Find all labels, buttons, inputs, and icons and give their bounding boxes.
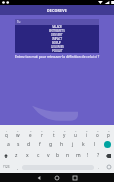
staticText: ! (87, 152, 89, 159)
staticText: 1 (6, 129, 8, 132)
button[interactable]: Backspace (103, 150, 114, 161)
staticText: 5 (53, 129, 55, 132)
button[interactable]: c (33, 150, 43, 161)
button[interactable]: l (89, 139, 100, 150)
staticText: l (94, 141, 96, 148)
button[interactable]: ENTREMETS (15, 29, 99, 33)
staticText: j (72, 141, 74, 148)
button[interactable]: ?123 (0, 161, 13, 173)
button[interactable]: j (67, 139, 78, 150)
button[interactable]: 7 (70, 128, 81, 139)
staticText: DESSERT (51, 33, 63, 37)
button[interactable]: 9 (92, 128, 103, 139)
staticText: q (5, 132, 8, 138)
staticText: , (17, 165, 19, 170)
staticText: n (66, 152, 70, 159)
button[interactable]: h (56, 139, 67, 150)
button[interactable]: Emoji (103, 161, 114, 173)
button[interactable]: Shift (0, 150, 11, 161)
button[interactable]: 4 (36, 128, 48, 139)
button[interactable]: f (34, 139, 45, 150)
button[interactable]: POULET (15, 49, 99, 53)
staticText: g (49, 141, 53, 148)
button[interactable]: Enter (100, 139, 114, 150)
staticText: p (107, 132, 110, 138)
staticText: Entrez ton mot pour retrouver la définit… (13, 54, 101, 58)
staticText: w (16, 132, 20, 138)
staticText: b (56, 152, 60, 159)
staticText: u (74, 132, 77, 138)
button[interactable]: 1 (0, 128, 12, 139)
staticText: 3 (30, 129, 32, 132)
staticText: o (96, 132, 99, 138)
button[interactable]: s (13, 139, 23, 150)
staticText: 0 (108, 129, 110, 132)
staticText: ?123 (3, 165, 10, 169)
staticText: 7 (75, 129, 77, 132)
staticText: IMPACT (52, 37, 63, 41)
staticText: 9 (97, 129, 99, 132)
staticText: 2 (17, 129, 19, 132)
staticText: LEGUMES (51, 45, 64, 49)
staticText: z (15, 152, 18, 159)
staticText: DECOREVE (47, 8, 68, 13)
button[interactable]: Home (48, 173, 66, 182)
staticText: v (47, 152, 50, 159)
button[interactable]: 3 (24, 128, 36, 139)
staticText: 6 (64, 129, 66, 132)
staticText: d (27, 141, 31, 148)
staticText: f (39, 141, 41, 148)
button[interactable]: LEGUMES (15, 45, 99, 49)
button[interactable]: b (53, 150, 63, 161)
staticText: a (7, 141, 10, 148)
button[interactable]: z (11, 150, 22, 161)
staticText: BOEUF (52, 41, 62, 45)
staticText: m (76, 152, 81, 159)
button[interactable]: k (78, 139, 89, 150)
staticText: ENTREMETS (49, 29, 65, 33)
staticText: x (26, 152, 29, 159)
button[interactable]: 0 (103, 128, 114, 139)
button[interactable]: 8 (81, 128, 92, 139)
button[interactable]: m (73, 150, 83, 161)
button[interactable]: 2 (12, 128, 24, 139)
button[interactable]: ! (83, 150, 93, 161)
button[interactable]: n (63, 150, 73, 161)
staticText: h (60, 141, 64, 148)
staticText: 4 (41, 129, 43, 132)
button[interactable]: 5 (48, 128, 59, 139)
staticText: . (98, 165, 100, 170)
staticText: 8 (86, 129, 88, 132)
button[interactable]: v (43, 150, 53, 161)
staticText: i (86, 132, 88, 138)
button[interactable]: Tu (15, 19, 99, 25)
button[interactable]: BOEUF (15, 41, 99, 45)
button[interactable]: Recents (66, 173, 84, 182)
staticText: Tu (17, 20, 21, 24)
staticText: s (17, 141, 20, 148)
button[interactable]: g (45, 139, 56, 150)
staticText: POULET (52, 49, 63, 53)
button[interactable]: x (22, 150, 33, 161)
button[interactable]: SALADE (15, 25, 99, 29)
staticText: t (53, 132, 55, 138)
button[interactable]: a (3, 139, 13, 150)
button[interactable]: , (13, 161, 22, 173)
button[interactable]: DESSERT (15, 33, 99, 37)
staticText: c (37, 152, 40, 159)
staticText: r (41, 132, 43, 138)
button[interactable]: Back (30, 173, 48, 182)
button[interactable]: d (23, 139, 34, 150)
staticText: k (82, 141, 85, 148)
staticText: ? (97, 152, 100, 159)
button[interactable]: ? (93, 150, 103, 161)
staticText: SALADE (52, 25, 63, 29)
button[interactable]: IMPACT (15, 37, 99, 41)
staticText: e (29, 132, 32, 138)
button[interactable]: 6 (59, 128, 70, 139)
staticText: y (63, 132, 66, 138)
